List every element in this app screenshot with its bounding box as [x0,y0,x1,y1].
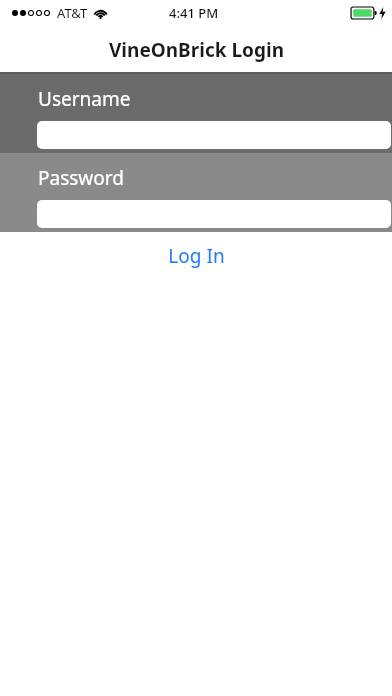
staticText: Password [38,165,124,191]
button[interactable] [37,200,391,228]
staticText: AT&T [57,4,88,22]
staticText: 4:41 PM [169,4,219,22]
staticText: VineOnBrick Login [109,37,284,63]
button[interactable] [37,121,391,149]
staticText: Log In [168,243,225,269]
staticText: Username [38,86,131,112]
button[interactable]: Log In [152,237,241,275]
